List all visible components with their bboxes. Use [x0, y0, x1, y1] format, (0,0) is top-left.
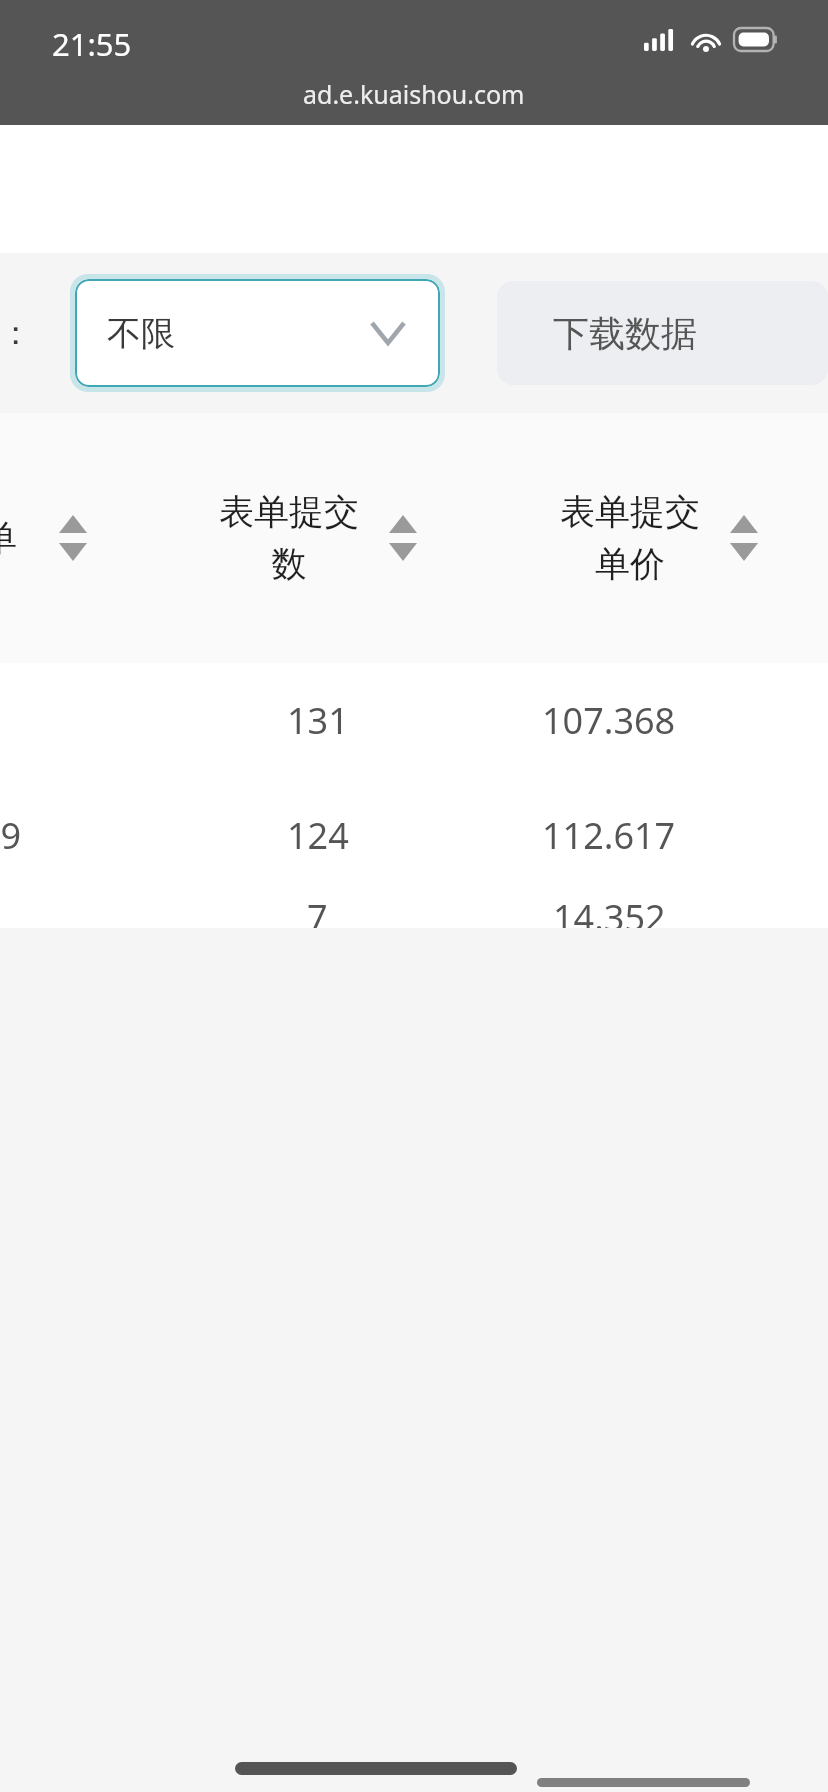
staticText: 107.368 — [542, 696, 676, 745]
button[interactable]: 不限 — [75, 279, 440, 387]
button[interactable]: 表单提交 单价 — [490, 413, 828, 663]
staticText: 89 — [0, 811, 22, 860]
staticText: 131 — [287, 696, 349, 745]
staticText: 表单提交 单价 — [560, 490, 700, 586]
button[interactable]: 7 — [0, 663, 828, 778]
staticText: 单 — [0, 516, 17, 560]
staticText: 7 — [307, 893, 328, 928]
staticText: 下载数据 — [553, 311, 697, 356]
staticText: 14.352 — [553, 893, 666, 928]
button[interactable]: 表单提交 数 — [145, 413, 490, 663]
button[interactable]: 下载数据 — [497, 281, 828, 385]
staticText: 分： — [0, 312, 32, 354]
staticText: 21:55 — [52, 23, 132, 65]
button[interactable]: 89 — [0, 778, 828, 893]
staticText: 112.617 — [542, 811, 676, 860]
button[interactable]: 单 — [0, 413, 145, 663]
staticText: 124 — [287, 811, 349, 860]
staticText: 不限 — [107, 312, 175, 355]
button[interactable]: 7 — [0, 893, 828, 928]
staticText: 表单提交 数 — [219, 490, 359, 586]
staticText: ad.e.kuaishou.com — [303, 77, 525, 111]
